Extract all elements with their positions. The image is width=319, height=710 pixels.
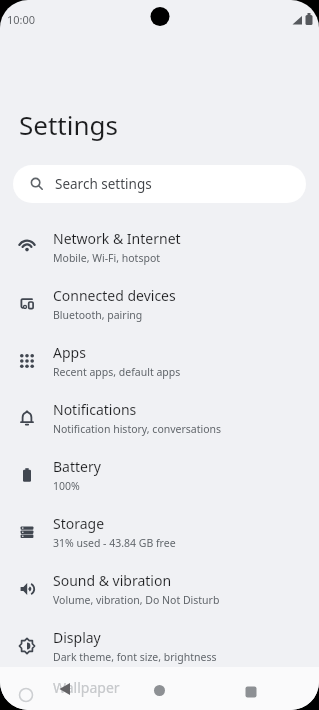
staticText: 100% bbox=[53, 479, 80, 493]
button[interactable] bbox=[213, 667, 319, 710]
button[interactable]: Notifications bbox=[0, 389, 319, 446]
button[interactable]: Battery bbox=[0, 446, 319, 503]
staticText: Connected devices bbox=[53, 286, 176, 305]
staticText: Mobile, Wi-Fi, hotspot bbox=[53, 251, 161, 265]
staticText: Apps bbox=[53, 343, 86, 362]
button[interactable]: Apps bbox=[0, 332, 319, 389]
staticText: Recent apps, default apps bbox=[53, 365, 181, 379]
button[interactable] bbox=[0, 667, 107, 710]
button[interactable]: Storage bbox=[0, 503, 319, 560]
button[interactable]: Sound & vibration bbox=[0, 560, 319, 617]
staticText: Dark theme, font size, brightness bbox=[53, 650, 217, 664]
button[interactable]: Connected devices bbox=[0, 275, 319, 332]
staticText: Wallpaper bbox=[53, 678, 120, 697]
staticText: Notification history, conversations bbox=[53, 422, 222, 436]
staticText: Sound & vibration bbox=[53, 571, 172, 590]
staticText: 31% used - 43.84 GB free bbox=[53, 536, 176, 550]
button[interactable] bbox=[107, 667, 213, 710]
staticText: Display bbox=[53, 628, 101, 647]
staticText: Network & Internet bbox=[53, 229, 181, 248]
staticText: 10:00 bbox=[7, 12, 36, 27]
staticText: Notifications bbox=[53, 400, 137, 419]
staticText: Storage bbox=[53, 514, 105, 533]
button[interactable]: Display bbox=[0, 617, 319, 674]
staticText: Volume, vibration, Do Not Disturb bbox=[53, 593, 220, 607]
staticText: Settings bbox=[19, 107, 118, 142]
staticText: Search settings bbox=[55, 175, 152, 193]
staticText: Battery bbox=[53, 457, 101, 476]
button[interactable]: Search settings bbox=[13, 165, 306, 203]
staticText: Bluetooth, pairing bbox=[53, 308, 143, 322]
button[interactable]: Network & Internet bbox=[0, 218, 319, 275]
